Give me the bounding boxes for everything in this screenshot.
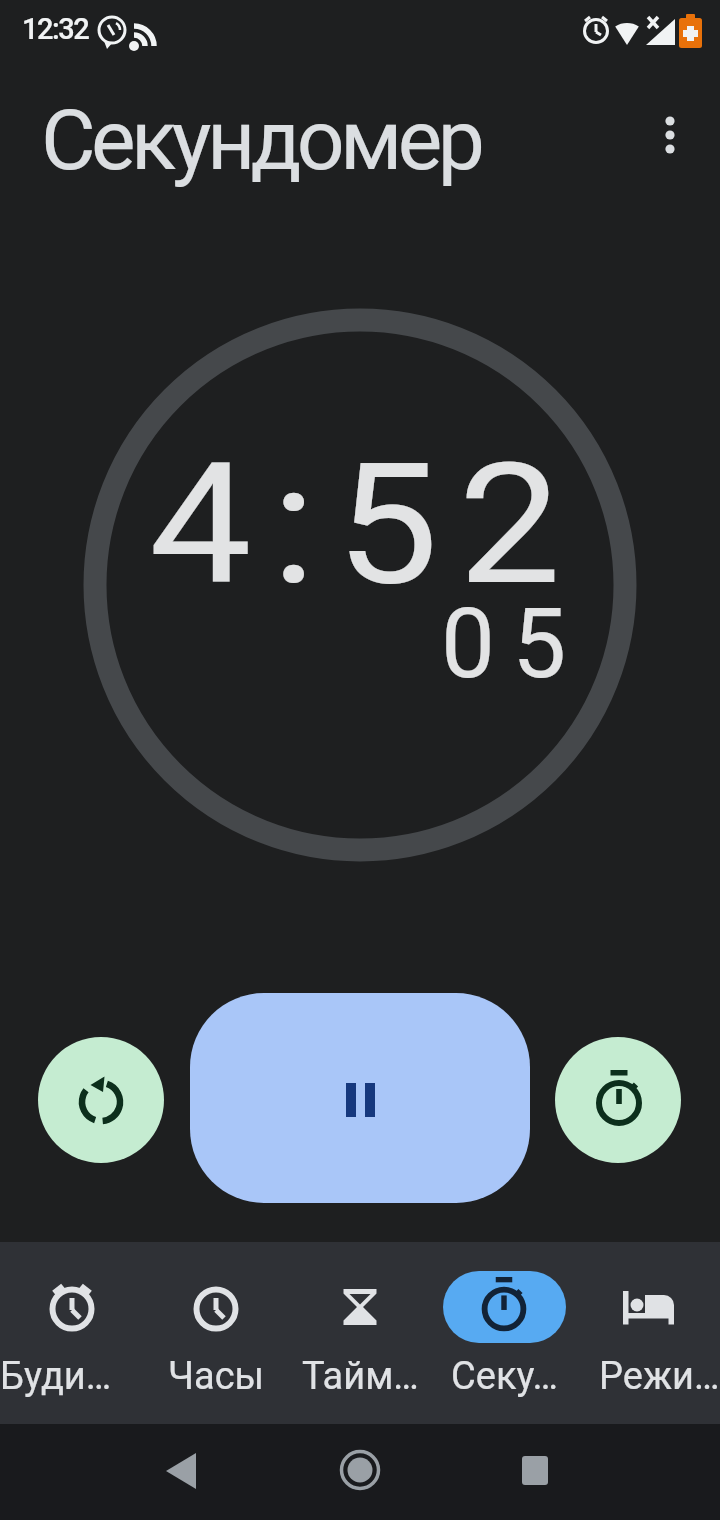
staticText: Секу… <box>451 1354 558 1399</box>
staticText: Часы <box>168 1354 265 1399</box>
staticText: 05 <box>441 588 584 701</box>
staticText: 4:52 <box>149 427 581 623</box>
staticText: 12:32 <box>22 12 89 46</box>
button[interactable] <box>121 1424 241 1520</box>
button[interactable] <box>300 1424 420 1520</box>
button[interactable]: Часы <box>144 1242 288 1424</box>
button[interactable] <box>475 1424 595 1520</box>
staticText: Секундомер <box>41 91 481 189</box>
staticText: Режи… <box>599 1354 720 1399</box>
button[interactable]: Режи… <box>576 1242 720 1424</box>
button[interactable]: Секу… <box>432 1242 576 1424</box>
button[interactable] <box>38 1037 164 1163</box>
button[interactable] <box>640 100 700 170</box>
button[interactable] <box>555 1037 681 1163</box>
staticText: Буди… <box>0 1354 112 1399</box>
staticText: Тайм… <box>302 1354 419 1399</box>
button[interactable]: Тайм… <box>288 1242 432 1424</box>
button[interactable] <box>190 993 530 1203</box>
button[interactable]: Буди… <box>0 1242 144 1424</box>
